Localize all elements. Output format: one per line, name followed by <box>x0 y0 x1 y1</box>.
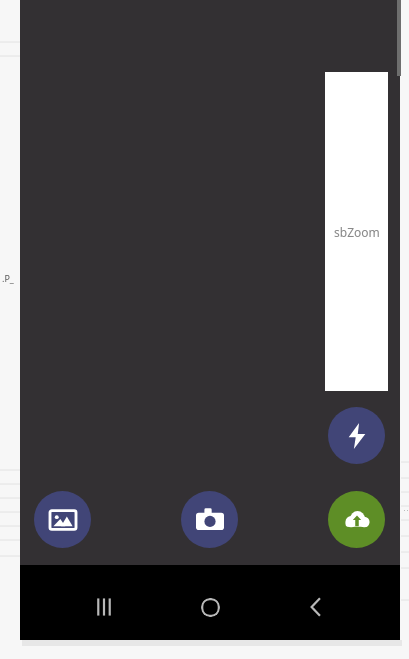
button[interactable]: Recent apps <box>76 579 132 635</box>
button[interactable]: Home <box>182 579 238 635</box>
staticText: .P_ <box>2 272 14 284</box>
staticText: sbZoom <box>334 224 380 240</box>
button[interactable]: Back <box>288 579 344 635</box>
button[interactable]: Take photo <box>181 491 238 548</box>
button[interactable]: Upload to cloud <box>328 491 385 548</box>
button[interactable]: Toggle flash <box>328 407 385 464</box>
button[interactable]: Open gallery <box>34 491 91 548</box>
button[interactable]: sbZoom <box>325 72 388 391</box>
